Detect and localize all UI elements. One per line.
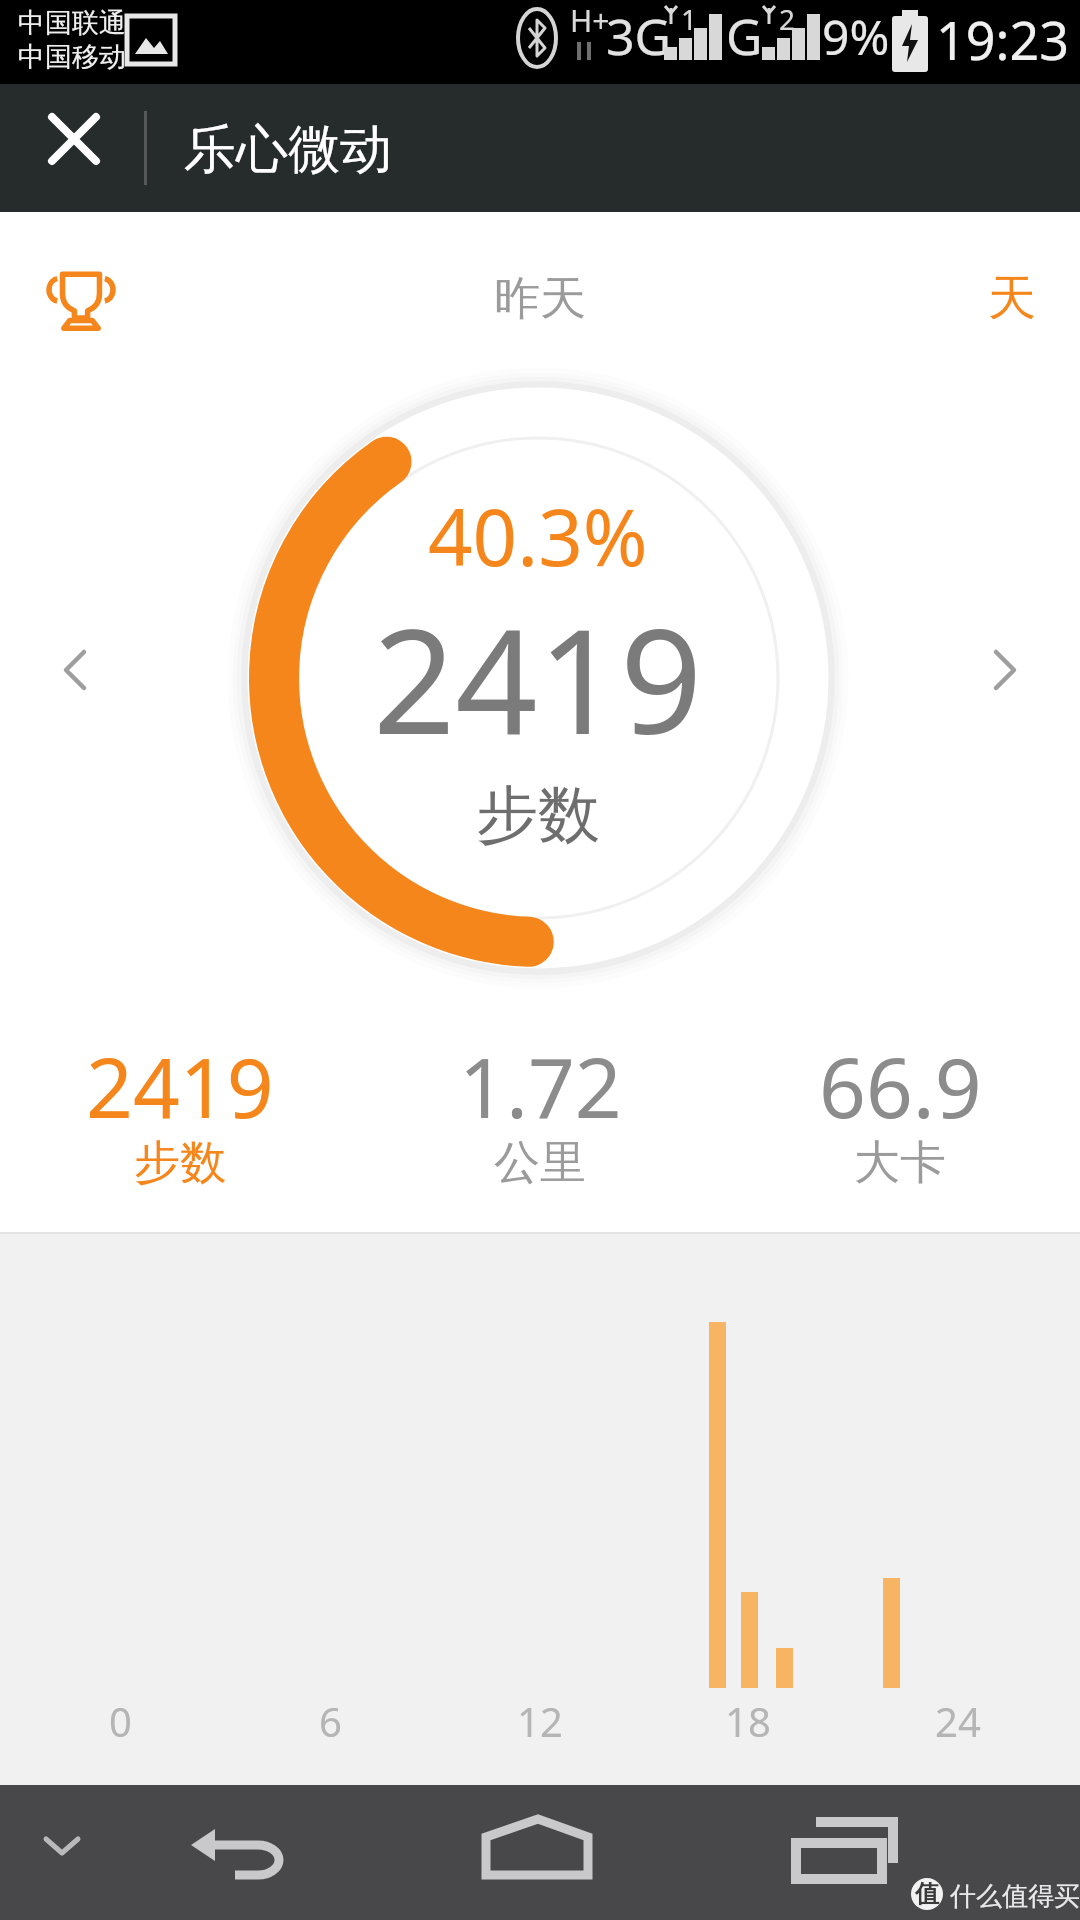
staticText: 6 [319,1694,342,1748]
staticText: 12 [517,1694,563,1748]
staticText: 中国移动 [18,40,126,74]
button[interactable] [788,1821,898,1881]
button[interactable] [992,650,1018,690]
staticText: H+ [570,0,610,41]
staticText: G [726,2,763,70]
staticText: 2419 [373,580,703,776]
staticText: 中国联通 [18,6,126,40]
staticText: 昨天 [494,270,586,328]
staticText: 24 [935,1694,981,1748]
staticText: 18 [725,1694,771,1748]
button[interactable] [48,270,114,330]
button[interactable]: 2419 [0,1030,360,1200]
staticText: 步数 [134,1134,226,1192]
staticText: 步数 [476,776,600,854]
button[interactable] [62,650,88,690]
staticText: 2 [779,0,796,38]
staticText: 0 [109,1694,132,1748]
staticText: 1.72 [459,1030,622,1142]
staticText: 19:23 [936,4,1069,75]
staticText: 66.9 [819,1030,982,1142]
button[interactable]: 66.9 [720,1030,1080,1200]
staticText: 40.3% [428,483,648,589]
staticText: 公里 [494,1134,586,1192]
button[interactable]: 天 [988,268,1036,328]
staticText: 大卡 [854,1134,946,1192]
button[interactable] [50,115,98,163]
staticText: 3G [606,2,671,70]
staticText: 什么值得买 [950,1880,1080,1913]
button[interactable] [189,1825,289,1881]
button[interactable]: 1.72 [360,1030,720,1200]
staticText: 9% [822,4,890,69]
staticText: 值 [915,1879,939,1909]
staticText: 1 [681,0,698,38]
staticText: 2419 [86,1030,274,1142]
button[interactable] [44,1833,80,1859]
button[interactable] [482,1817,592,1877]
staticText: 乐心微动 [184,117,392,183]
